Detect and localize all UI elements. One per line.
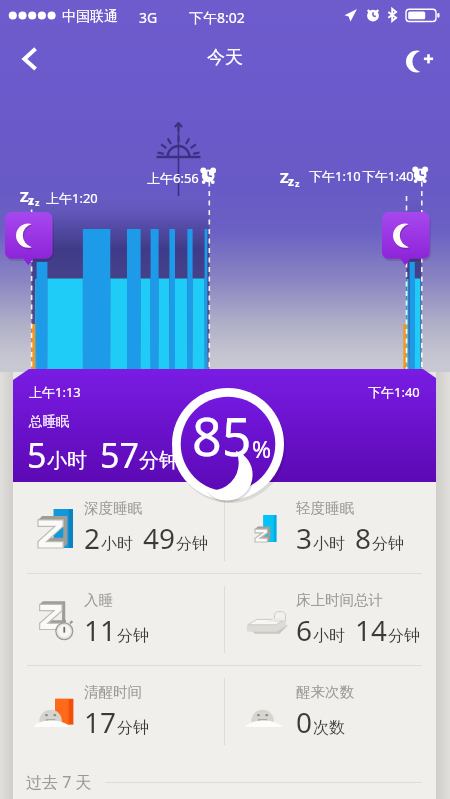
staticText: 轻度睡眠 — [296, 499, 354, 517]
button[interactable]: 清醒时间 — [13, 666, 224, 757]
staticText: 6 — [296, 611, 313, 649]
staticText: 小时 — [47, 448, 87, 473]
staticText: 今天 — [207, 46, 243, 69]
staticText: 17 — [84, 703, 117, 741]
staticText: 上午1:20 — [46, 189, 98, 207]
staticText: 下午1:10 — [309, 167, 361, 185]
staticText: 8 — [355, 519, 372, 557]
staticText: 2 — [84, 519, 101, 557]
staticText: 分钟 — [372, 534, 404, 554]
button[interactable]: 轻度睡眠 — [225, 482, 436, 573]
button[interactable]: Back — [8, 37, 52, 81]
button[interactable]: Add sleep — [402, 40, 442, 80]
staticText: 入睡 — [84, 591, 113, 609]
staticText: 85 — [192, 400, 252, 471]
staticText: z — [295, 177, 300, 189]
staticText: 下午1:40 — [362, 167, 414, 185]
staticText: 5 — [27, 432, 47, 478]
staticText: 上午1:13 — [29, 383, 81, 401]
button[interactable]: 过去 7 天 — [13, 765, 436, 799]
staticText: 深度睡眠 — [84, 499, 142, 517]
staticText: 清醒时间 — [84, 683, 142, 701]
staticText: 床上时间总计 — [296, 591, 383, 609]
staticText: 分钟 — [388, 626, 420, 646]
button[interactable]: 入睡 — [13, 574, 224, 665]
staticText: 3G — [139, 8, 158, 27]
staticText: Z — [20, 186, 29, 206]
staticText: 3 — [296, 519, 313, 557]
staticText: 分钟 — [117, 718, 149, 738]
button[interactable]: 深度睡眠 — [13, 482, 224, 573]
staticText: 次数 — [313, 718, 345, 738]
staticText: 分钟 — [117, 626, 149, 646]
staticText: z — [288, 173, 294, 189]
staticText: 小时 — [101, 534, 133, 554]
staticText: 下午1:40 — [368, 383, 420, 401]
staticText: 分钟 — [139, 448, 179, 473]
staticText: 11 — [84, 611, 117, 649]
staticText: 0 — [296, 703, 313, 741]
staticText: 分钟 — [176, 534, 208, 554]
button[interactable]: 醒来次数 — [225, 666, 436, 757]
button[interactable]: 床上时间总计 — [225, 574, 436, 665]
staticText: 14 — [355, 611, 388, 649]
staticText: 小时 — [313, 534, 345, 554]
staticText: z — [28, 192, 34, 208]
staticText: 小时 — [313, 626, 345, 646]
staticText: 总睡眠 — [29, 413, 70, 430]
staticText: 中国联通 — [62, 8, 118, 26]
staticText: Z — [280, 167, 289, 187]
staticText: 醒来次数 — [296, 683, 354, 701]
staticText: z — [35, 196, 40, 208]
staticText: 过去 7 天 — [26, 771, 92, 793]
staticText: 上午6:56 — [147, 169, 199, 187]
staticText: % — [252, 433, 272, 464]
staticText: 49 — [143, 519, 176, 557]
staticText: 57 — [100, 432, 139, 478]
staticText: 下午8:02 — [189, 8, 245, 27]
